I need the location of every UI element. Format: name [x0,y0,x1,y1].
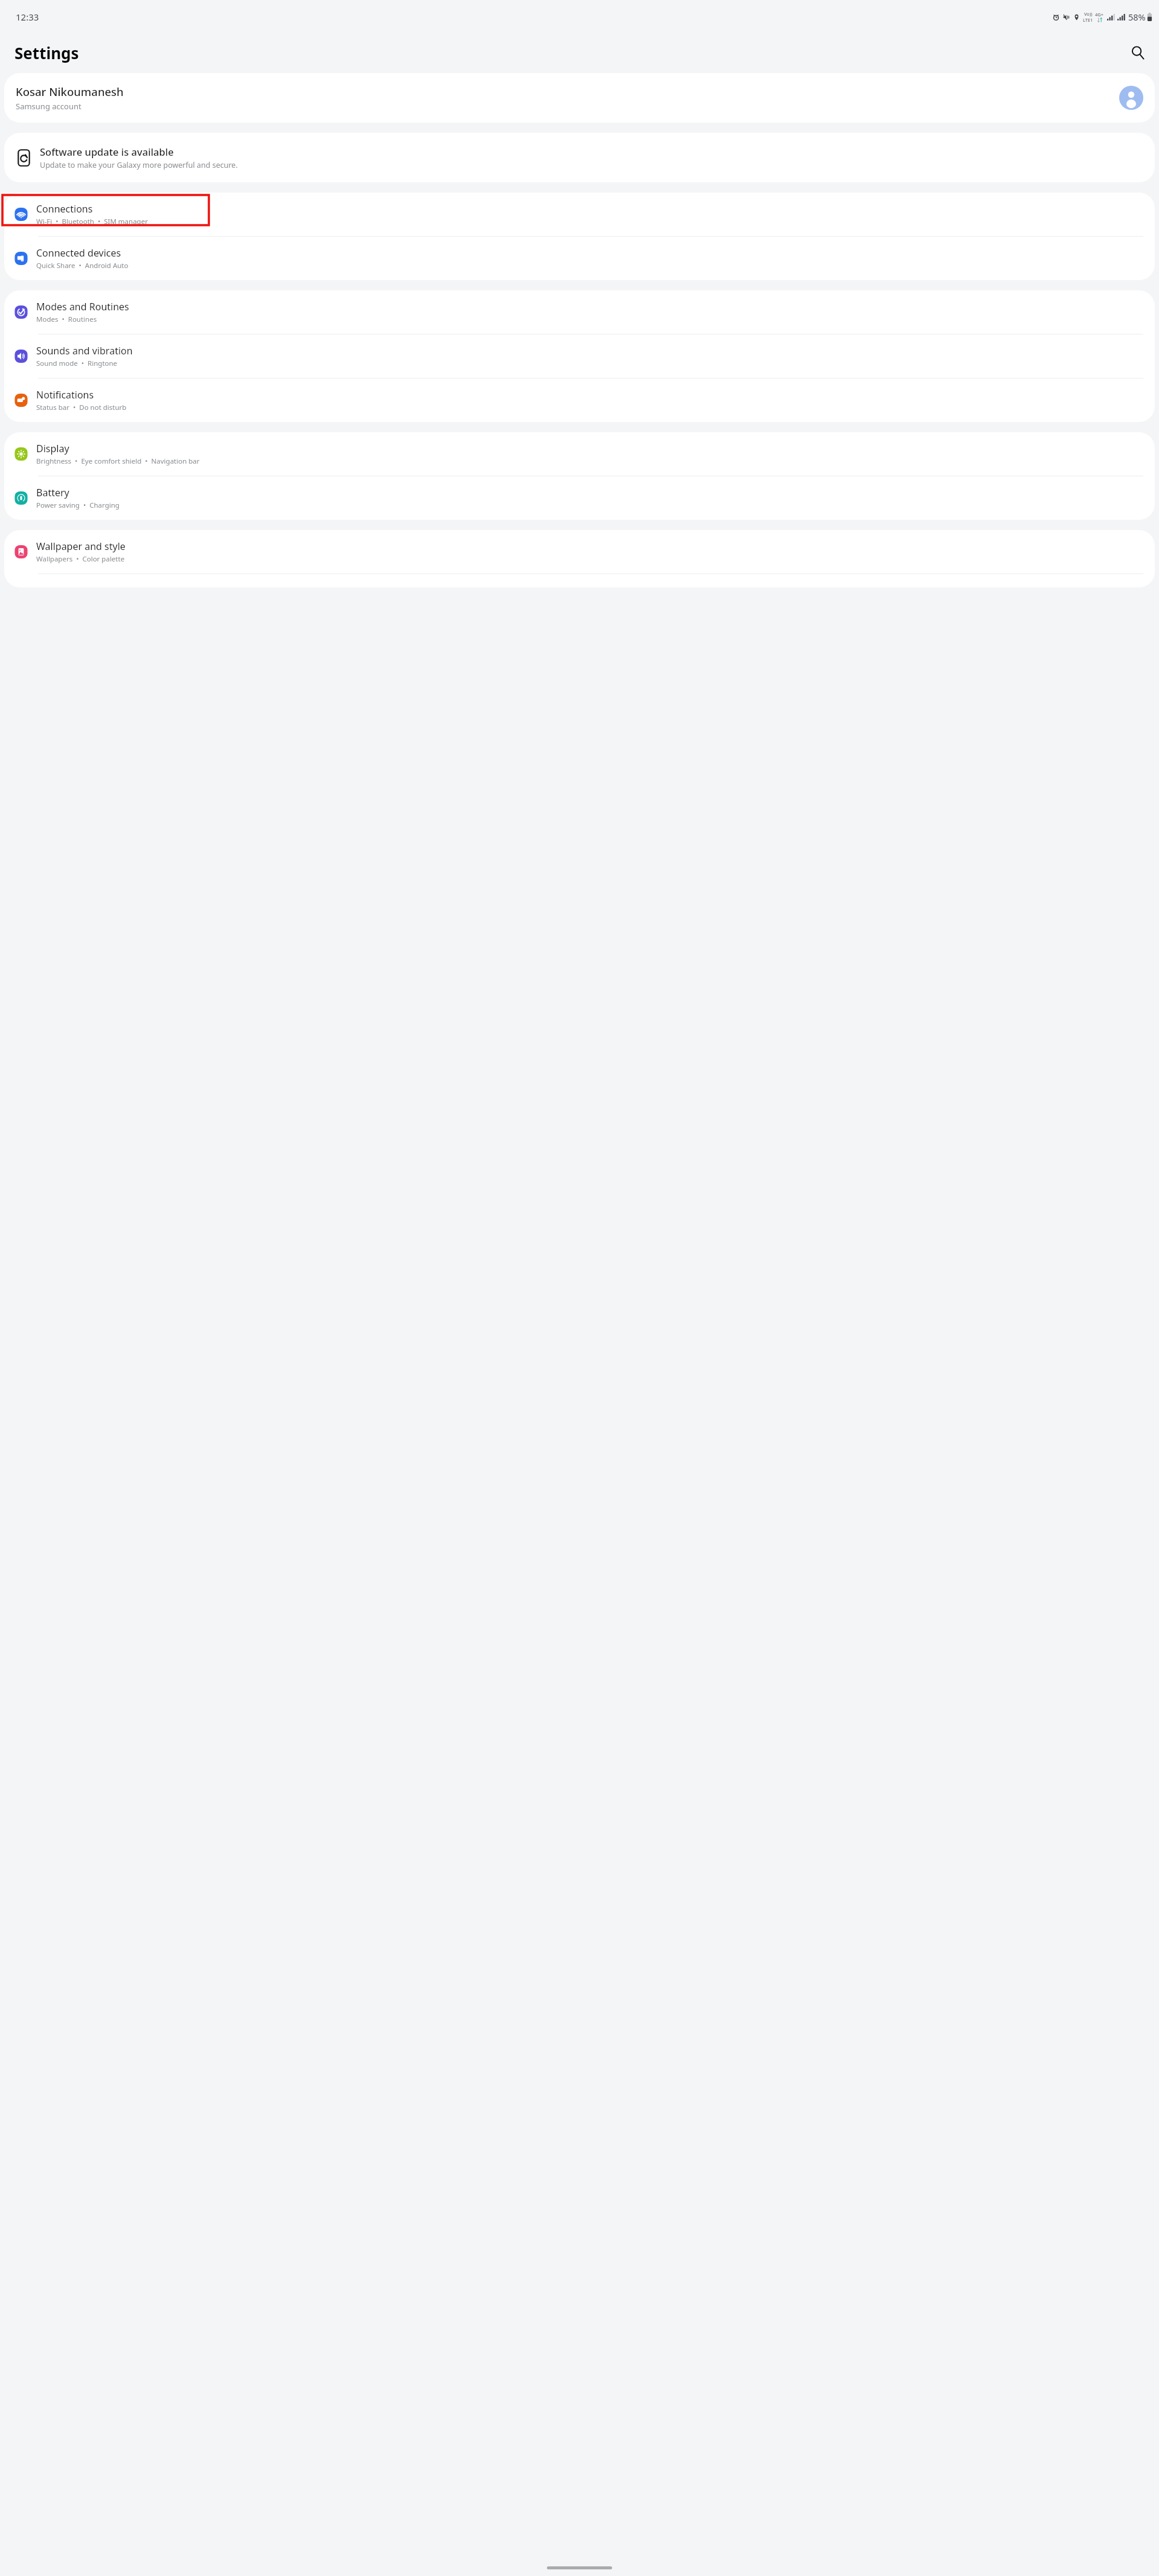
staticText: Battery [36,486,69,499]
button[interactable]: Display [4,432,1155,476]
button[interactable]: Software update is available [4,133,1155,182]
staticText: Settings [14,42,79,63]
staticText: Quick Share • Android Auto [36,261,129,270]
staticText: Update to make your Galaxy more powerful… [40,160,238,170]
button[interactable]: Sounds and vibration [4,334,1155,378]
staticText: Wallpapers • Color palette [36,554,125,564]
button[interactable]: Kosar Nikoumanesh [4,73,1155,123]
staticText: Samsung account [16,101,81,112]
button[interactable]: Connected devices [4,237,1155,280]
button[interactable]: Search [1125,39,1151,66]
staticText: Connections [36,202,93,216]
staticText: 12:33 [16,11,39,23]
staticText: Notifications [36,388,94,401]
staticText: 58% [1128,11,1146,23]
staticText: Connected devices [36,246,121,260]
staticText: Wallpaper and style [36,540,126,553]
staticText: Modes • Routines [36,315,97,324]
button[interactable]: Modes and Routines [4,290,1155,334]
staticText: Vo)) [1084,11,1093,17]
button[interactable]: Connections [4,193,1155,236]
staticText: Kosar Nikoumanesh [16,84,124,99]
staticText: Software update is available [40,145,174,158]
staticText: Modes and Routines [36,300,129,313]
staticText: Wi-Fi • Bluetooth • SIM manager [36,217,148,226]
staticText: 4G+ [1095,11,1104,18]
button[interactable]: Battery [4,476,1155,520]
button[interactable]: Notifications [4,379,1155,422]
button[interactable]: Wallpaper and style [4,530,1155,574]
staticText: Sound mode • Ringtone [36,359,118,368]
staticText: Display [36,442,69,455]
staticText: Status bar • Do not disturb [36,403,127,412]
staticText: Brightness • Eye comfort shield • Naviga… [36,456,200,466]
staticText: LTE1 [1083,17,1093,23]
staticText: Sounds and vibration [36,344,133,357]
staticText: Power saving • Charging [36,500,120,510]
